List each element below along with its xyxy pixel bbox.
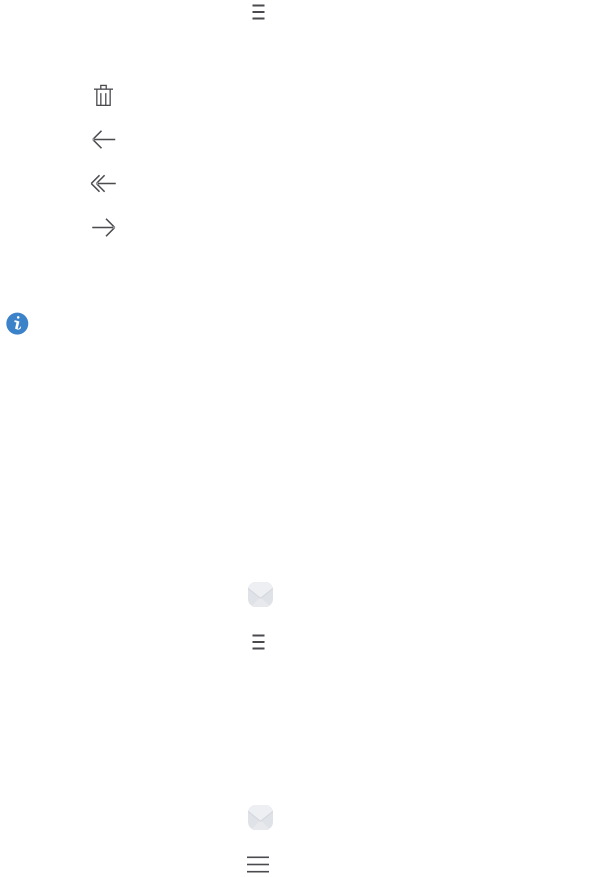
button[interactable]: Back	[87, 125, 121, 154]
button[interactable]: Information	[6, 313, 28, 335]
button[interactable]: Menu	[246, 628, 270, 655]
button[interactable]: Previous	[85, 169, 122, 198]
button[interactable]: Menu	[241, 850, 275, 877]
button[interactable]: Menu	[246, 0, 270, 25]
button[interactable]: Forward	[86, 213, 121, 242]
button[interactable]: Delete	[88, 78, 119, 112]
